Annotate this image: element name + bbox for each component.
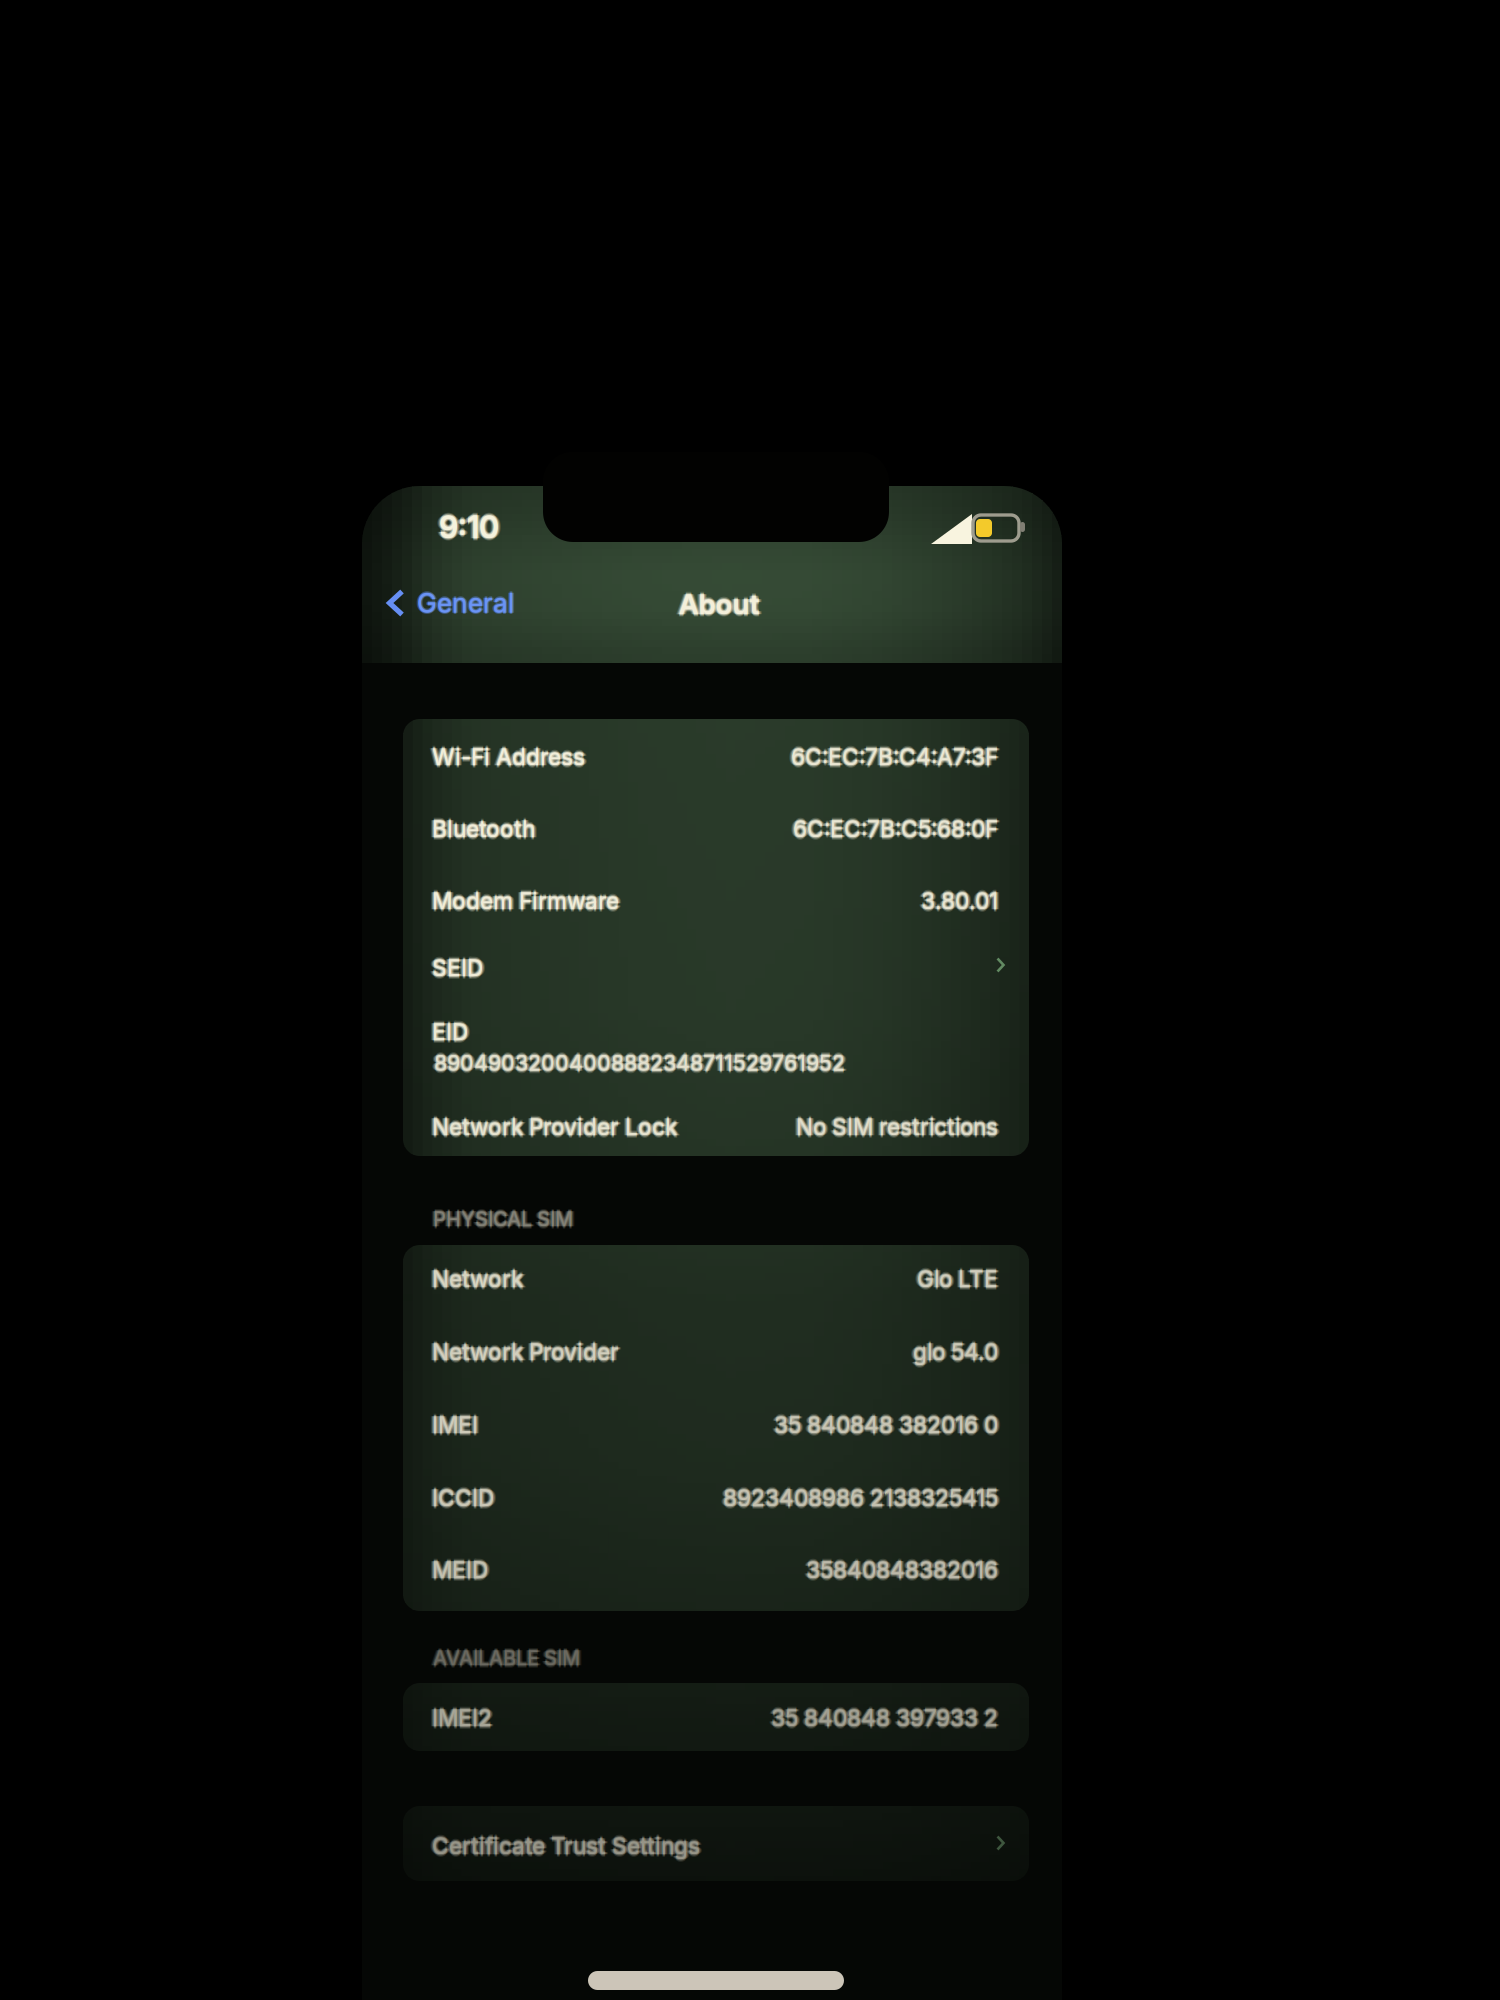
staticText: About bbox=[678, 588, 759, 622]
staticText: SEID bbox=[435, 954, 486, 982]
button[interactable]: MEID bbox=[432, 1557, 998, 1583]
staticText: Certificate Trust Settings bbox=[432, 1835, 700, 1862]
staticText: IMEI bbox=[432, 1409, 478, 1436]
staticText: 9:10 bbox=[440, 508, 500, 545]
staticText: 6C:EC:7B:C4:A7:3F bbox=[791, 742, 998, 769]
staticText: EID bbox=[429, 1018, 465, 1046]
staticText: Bluetooth bbox=[432, 817, 535, 844]
staticText: 9:10 bbox=[439, 511, 499, 548]
staticText: 35840848382016 bbox=[807, 1556, 999, 1584]
staticText: 3.80.01 bbox=[921, 886, 998, 913]
staticText: Network Provider Lock bbox=[429, 1113, 674, 1141]
staticText: 35 840848 397933 2 bbox=[771, 1703, 998, 1730]
staticText: General bbox=[417, 587, 514, 619]
staticText: 89049032004008882348711529761952 bbox=[434, 1048, 845, 1073]
staticText: About bbox=[677, 587, 758, 621]
staticText: 35 840848 382016 0 bbox=[774, 1414, 998, 1441]
staticText: Glo LTE bbox=[920, 1265, 1001, 1293]
staticText: SEID bbox=[429, 954, 480, 982]
staticText: Glo LTE bbox=[917, 1264, 998, 1291]
button[interactable]: Certificate Trust Settings bbox=[432, 1833, 998, 1859]
button[interactable]: IMEI bbox=[432, 1412, 998, 1438]
staticText: Bluetooth bbox=[432, 818, 535, 845]
staticText: Network Provider Lock bbox=[432, 1115, 677, 1142]
staticText: 3.80.01 bbox=[924, 887, 1001, 915]
staticText: Network bbox=[430, 1265, 521, 1293]
staticText: 35 840848 382016 0 bbox=[774, 1413, 998, 1440]
staticText: Glo LTE bbox=[917, 1265, 998, 1293]
staticText: General bbox=[417, 588, 514, 621]
staticText: glo 54.0 bbox=[911, 1338, 996, 1366]
staticText: 8923408986 2138325415 bbox=[721, 1484, 996, 1512]
staticText: 35840848382016 bbox=[806, 1555, 998, 1582]
button[interactable]: Network Provider bbox=[432, 1339, 998, 1365]
staticText: Wi-Fi Address bbox=[432, 742, 585, 769]
staticText: 6C:EC:7B:C5:68:0F bbox=[793, 814, 998, 841]
staticText: ICCID bbox=[432, 1484, 494, 1512]
staticText: Bluetooth bbox=[429, 815, 532, 843]
staticText: MEID bbox=[435, 1556, 491, 1584]
staticText: No SIM restrictions bbox=[796, 1113, 998, 1141]
staticText: AVAILABLE SIM bbox=[434, 1646, 581, 1670]
staticText: About bbox=[678, 587, 759, 621]
staticText: AVAILABLE SIM bbox=[433, 1643, 580, 1668]
staticText: 35 840848 397933 2 bbox=[771, 1702, 998, 1729]
button[interactable]: EID bbox=[432, 1019, 998, 1045]
staticText: IMEI bbox=[432, 1411, 478, 1439]
staticText: Wi-Fi Address bbox=[430, 743, 583, 771]
staticText: Network Provider bbox=[429, 1338, 616, 1366]
staticText: Certificate Trust Settings bbox=[432, 1831, 700, 1858]
staticText: 8923408986 2138325415 bbox=[723, 1482, 998, 1509]
staticText: 6C:EC:7B:C4:A7:3F bbox=[791, 745, 998, 772]
staticText: IMEI bbox=[429, 1411, 475, 1439]
staticText: 35840848382016 bbox=[803, 1556, 995, 1584]
staticText: MEID bbox=[430, 1556, 486, 1584]
staticText: About bbox=[678, 589, 759, 623]
staticText: Certificate Trust Settings bbox=[429, 1832, 697, 1860]
staticText: AVAILABLE SIM bbox=[433, 1646, 580, 1670]
staticText: IMEI2 bbox=[430, 1704, 490, 1732]
button[interactable]: Wi-Fi Address bbox=[432, 744, 998, 770]
staticText: 3.80.01 bbox=[922, 887, 999, 915]
staticText: General bbox=[419, 587, 516, 619]
staticText: EID bbox=[432, 1020, 468, 1047]
staticText: SEID bbox=[432, 952, 483, 979]
staticText: Modem Firmware bbox=[435, 887, 622, 915]
staticText: Network bbox=[429, 1265, 520, 1293]
staticText: 3.80.01 bbox=[919, 887, 996, 915]
staticText: Network Provider Lock bbox=[432, 1116, 677, 1143]
staticText: 35840848382016 bbox=[806, 1556, 998, 1584]
staticText: 6C:EC:7B:C4:A7:3F bbox=[791, 741, 998, 768]
staticText: MEID bbox=[432, 1559, 488, 1586]
button[interactable]: SEID bbox=[432, 955, 998, 981]
staticText: 35 840848 397933 2 bbox=[772, 1704, 999, 1732]
staticText: 89049032004008882348711529761952 bbox=[434, 1050, 845, 1076]
staticText: 6C:EC:7B:C5:68:0F bbox=[793, 818, 998, 845]
button[interactable]: General bbox=[386, 581, 561, 625]
staticText: MEID bbox=[429, 1556, 485, 1584]
staticText: No SIM restrictions bbox=[796, 1112, 998, 1139]
staticText: Certificate Trust Settings bbox=[430, 1832, 698, 1860]
button[interactable]: Network bbox=[432, 1266, 998, 1292]
staticText: 6C:EC:7B:C5:68:0F bbox=[794, 815, 999, 843]
staticText: AVAILABLE SIM bbox=[433, 1648, 580, 1672]
staticText: Wi-Fi Address bbox=[432, 746, 585, 773]
staticText: 35840848382016 bbox=[804, 1556, 996, 1584]
button[interactable]: IMEI2 bbox=[432, 1705, 998, 1731]
button[interactable]: ICCID bbox=[432, 1485, 998, 1511]
button[interactable]: Bluetooth bbox=[432, 816, 998, 842]
staticText: 35 840848 397933 2 bbox=[771, 1706, 998, 1733]
staticText: Bluetooth bbox=[433, 815, 536, 843]
staticText: No SIM restrictions bbox=[797, 1113, 999, 1141]
button[interactable]: Modem Firmware bbox=[432, 888, 998, 914]
staticText: No SIM restrictions bbox=[799, 1113, 1001, 1141]
button[interactable]: Network Provider Lock bbox=[432, 1114, 998, 1140]
staticText: AVAILABLE SIM bbox=[431, 1646, 578, 1670]
staticText: glo 54.0 bbox=[913, 1337, 998, 1364]
staticText: Glo LTE bbox=[917, 1267, 998, 1294]
staticText: ICCID bbox=[432, 1486, 494, 1513]
staticText: Network bbox=[432, 1268, 523, 1295]
staticText: 6C:EC:7B:C5:68:0F bbox=[790, 815, 995, 843]
staticText: IMEI bbox=[432, 1414, 478, 1441]
staticText: ICCID bbox=[432, 1487, 494, 1514]
